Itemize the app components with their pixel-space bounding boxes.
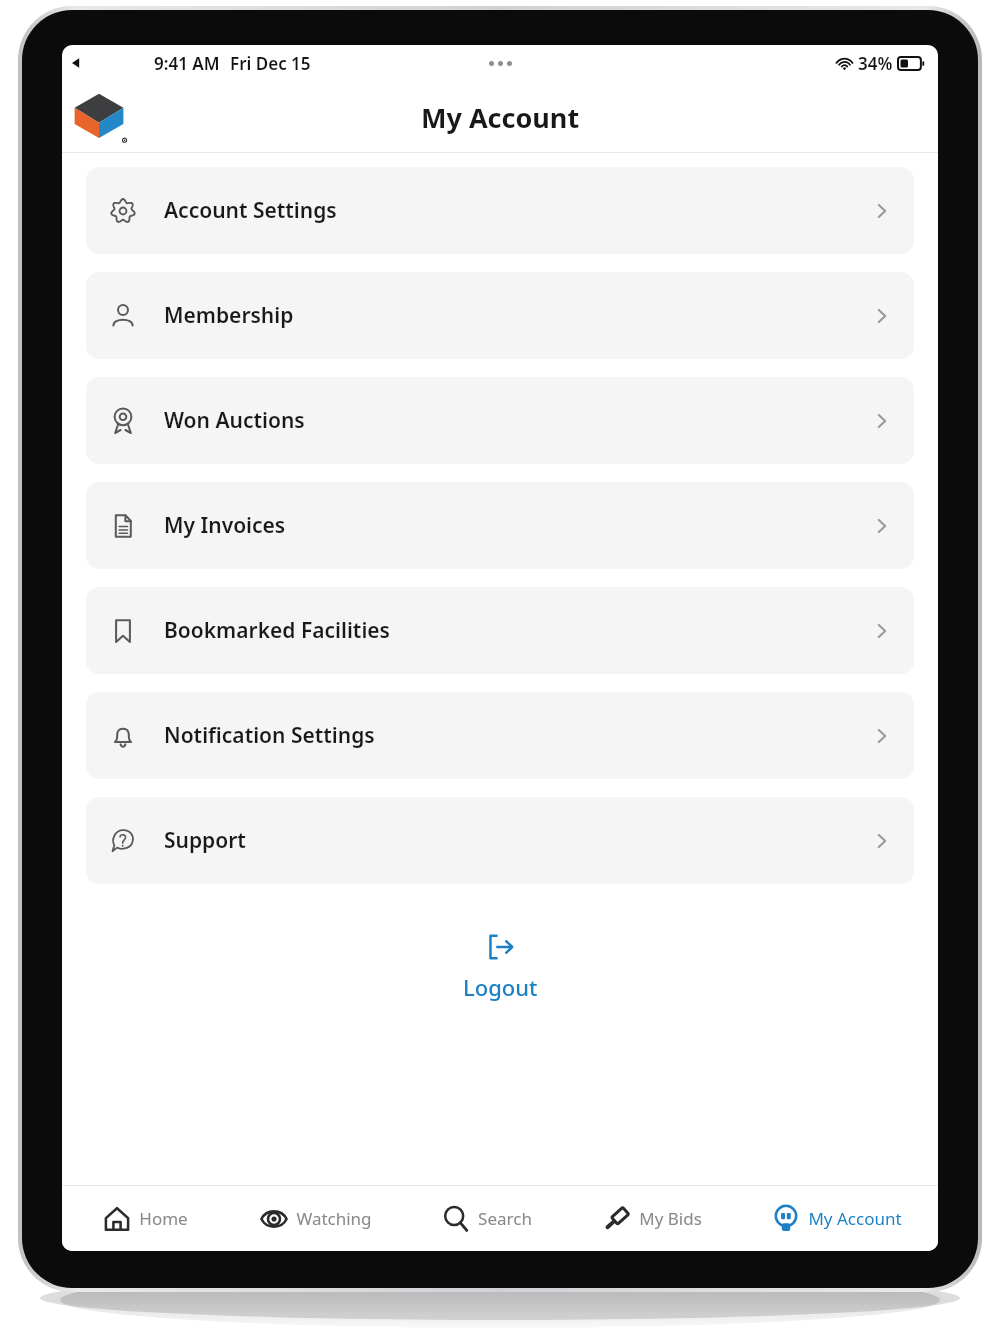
staticText: My Bids bbox=[639, 1207, 702, 1230]
staticText: Home bbox=[139, 1207, 188, 1230]
button[interactable]: Support bbox=[86, 797, 914, 884]
other: Logo bbox=[70, 88, 128, 146]
staticText: Won Auctions bbox=[164, 406, 305, 435]
button[interactable]: Bookmarked Facilities bbox=[86, 587, 914, 674]
button[interactable]: Search bbox=[404, 1186, 568, 1251]
button[interactable]: My Account bbox=[735, 1186, 938, 1251]
button[interactable]: Notification Settings bbox=[86, 692, 914, 779]
staticText: Search bbox=[478, 1207, 532, 1230]
button[interactable]: Logout bbox=[86, 930, 914, 1002]
button[interactable]: Membership bbox=[86, 272, 914, 359]
button[interactable]: My Invoices bbox=[86, 482, 914, 569]
staticText: Support bbox=[164, 826, 246, 855]
button[interactable]: Home bbox=[62, 1186, 227, 1251]
staticText: My Invoices bbox=[164, 511, 286, 540]
staticText: My Account bbox=[808, 1207, 902, 1230]
staticText: Logout bbox=[463, 972, 538, 1002]
staticText: Bookmarked Facilities bbox=[164, 616, 390, 645]
staticText: Watching bbox=[296, 1207, 372, 1230]
staticText: My Account bbox=[421, 99, 580, 136]
button[interactable]: Won Auctions bbox=[86, 377, 914, 464]
staticText: 9:41 AM bbox=[154, 52, 220, 75]
staticText: Fri Dec 15 bbox=[230, 52, 311, 75]
button[interactable]: Watching bbox=[227, 1186, 404, 1251]
staticText: Membership bbox=[164, 301, 294, 330]
button[interactable]: Account Settings bbox=[86, 167, 914, 254]
staticText: Account Settings bbox=[164, 196, 337, 225]
button[interactable]: My Bids bbox=[568, 1186, 735, 1251]
staticText: Notification Settings bbox=[164, 721, 375, 750]
staticText: 34% bbox=[858, 52, 893, 75]
